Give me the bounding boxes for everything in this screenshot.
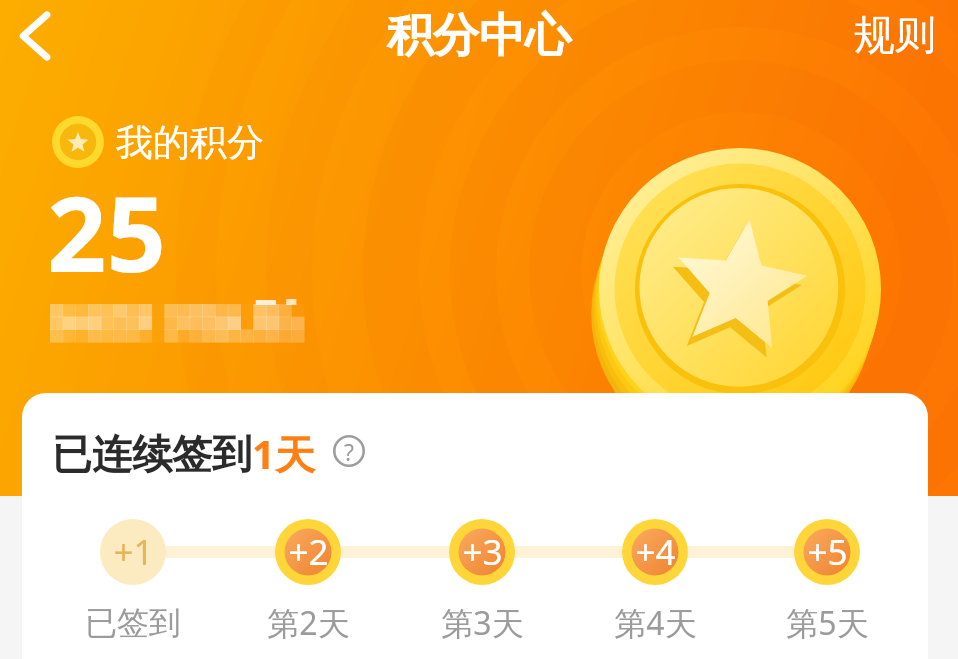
staticText: 第3天 <box>441 601 524 645</box>
staticText: +1 <box>113 528 154 576</box>
staticText: 第5天 <box>786 601 869 645</box>
button[interactable]: Back <box>0 0 72 72</box>
staticText: 我的积分 <box>116 119 264 166</box>
button[interactable]: +3 <box>427 512 537 644</box>
staticText: ? <box>344 436 354 467</box>
staticText: 积分中心 <box>387 7 571 65</box>
staticText: +5 <box>807 528 848 576</box>
button[interactable]: 规则 <box>854 10 936 62</box>
staticText: 规则 <box>854 10 936 62</box>
button[interactable]: +2 <box>253 512 363 644</box>
staticText: 25 <box>47 161 166 303</box>
staticText: 已签到 <box>85 603 181 643</box>
button[interactable]: +4 <box>600 512 710 644</box>
staticText: +3 <box>462 528 503 576</box>
staticText: +2 <box>288 528 329 576</box>
button[interactable]: +5 <box>772 512 882 644</box>
staticText: 第2天 <box>267 601 350 645</box>
button[interactable]: +1 <box>78 512 188 644</box>
button[interactable]: Help <box>331 433 367 469</box>
staticText: 1天 <box>252 426 315 481</box>
staticText: +4 <box>635 528 676 576</box>
staticText: 已连续签到 <box>52 429 252 479</box>
staticText: 第4天 <box>614 601 697 645</box>
